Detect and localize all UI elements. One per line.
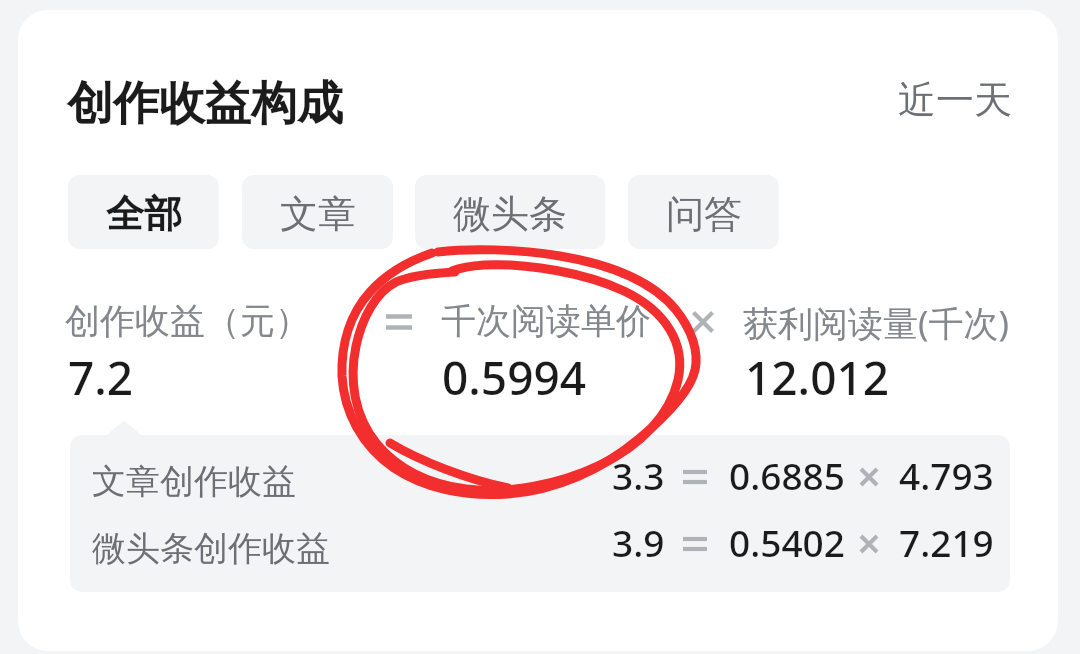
staticText: 3.9 [612,517,665,567]
button[interactable]: 文章 [242,175,393,249]
button[interactable]: 全部 [68,175,219,249]
staticText: 0.5994 [442,346,587,409]
staticText: 获利阅读量(千次) [743,299,1010,347]
staticText: 微头条创作收益 [92,527,330,570]
staticText: 3.3 [612,450,665,500]
staticText: 微头条 [453,190,567,238]
staticText: 问答 [666,190,742,238]
staticText: 7.2 [68,346,134,409]
button[interactable] [70,510,1010,580]
button[interactable]: 创作收益构成 [67,75,343,133]
staticText: 7.219 [899,517,994,567]
staticText: 千次阅读单价 [441,299,651,343]
staticText: 创作收益（元） [65,299,310,343]
button[interactable]: 选择时间范围：近一天 [891,71,1019,129]
staticText: 12.012 [745,346,890,409]
staticText: 0.6885 [729,450,845,500]
staticText: 0.5402 [729,517,845,567]
staticText: 全部 [106,190,182,238]
staticText: 4.793 [899,450,994,500]
staticText: 文章创作收益 [92,460,296,503]
button[interactable] [70,440,1010,510]
staticText: 文章 [280,190,356,238]
button[interactable]: 问答 [628,175,779,249]
button[interactable]: 微头条 [415,175,605,249]
staticText: 创作收益构成 [67,75,343,133]
staticText: 近一天 [898,76,1012,124]
